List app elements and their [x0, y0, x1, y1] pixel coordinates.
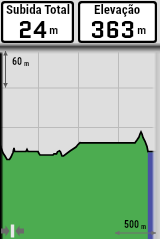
- staticText: m: [49, 22, 59, 38]
- staticText: 500: [124, 219, 140, 231]
- staticText: 363: [90, 14, 136, 47]
- staticText: 60: [12, 56, 23, 68]
- staticText: 24: [18, 14, 48, 47]
- staticText: m: [24, 60, 30, 68]
- staticText: m: [141, 223, 147, 231]
- staticText: m: [137, 22, 147, 38]
- staticText: Subida Total: [6, 2, 70, 17]
- button[interactable]: Elevação: [78, 1, 157, 43]
- button[interactable]: Subida Total: [1, 1, 74, 43]
- button[interactable]: Zoom scale: [1, 224, 24, 238]
- staticText: Elevação: [94, 2, 141, 17]
